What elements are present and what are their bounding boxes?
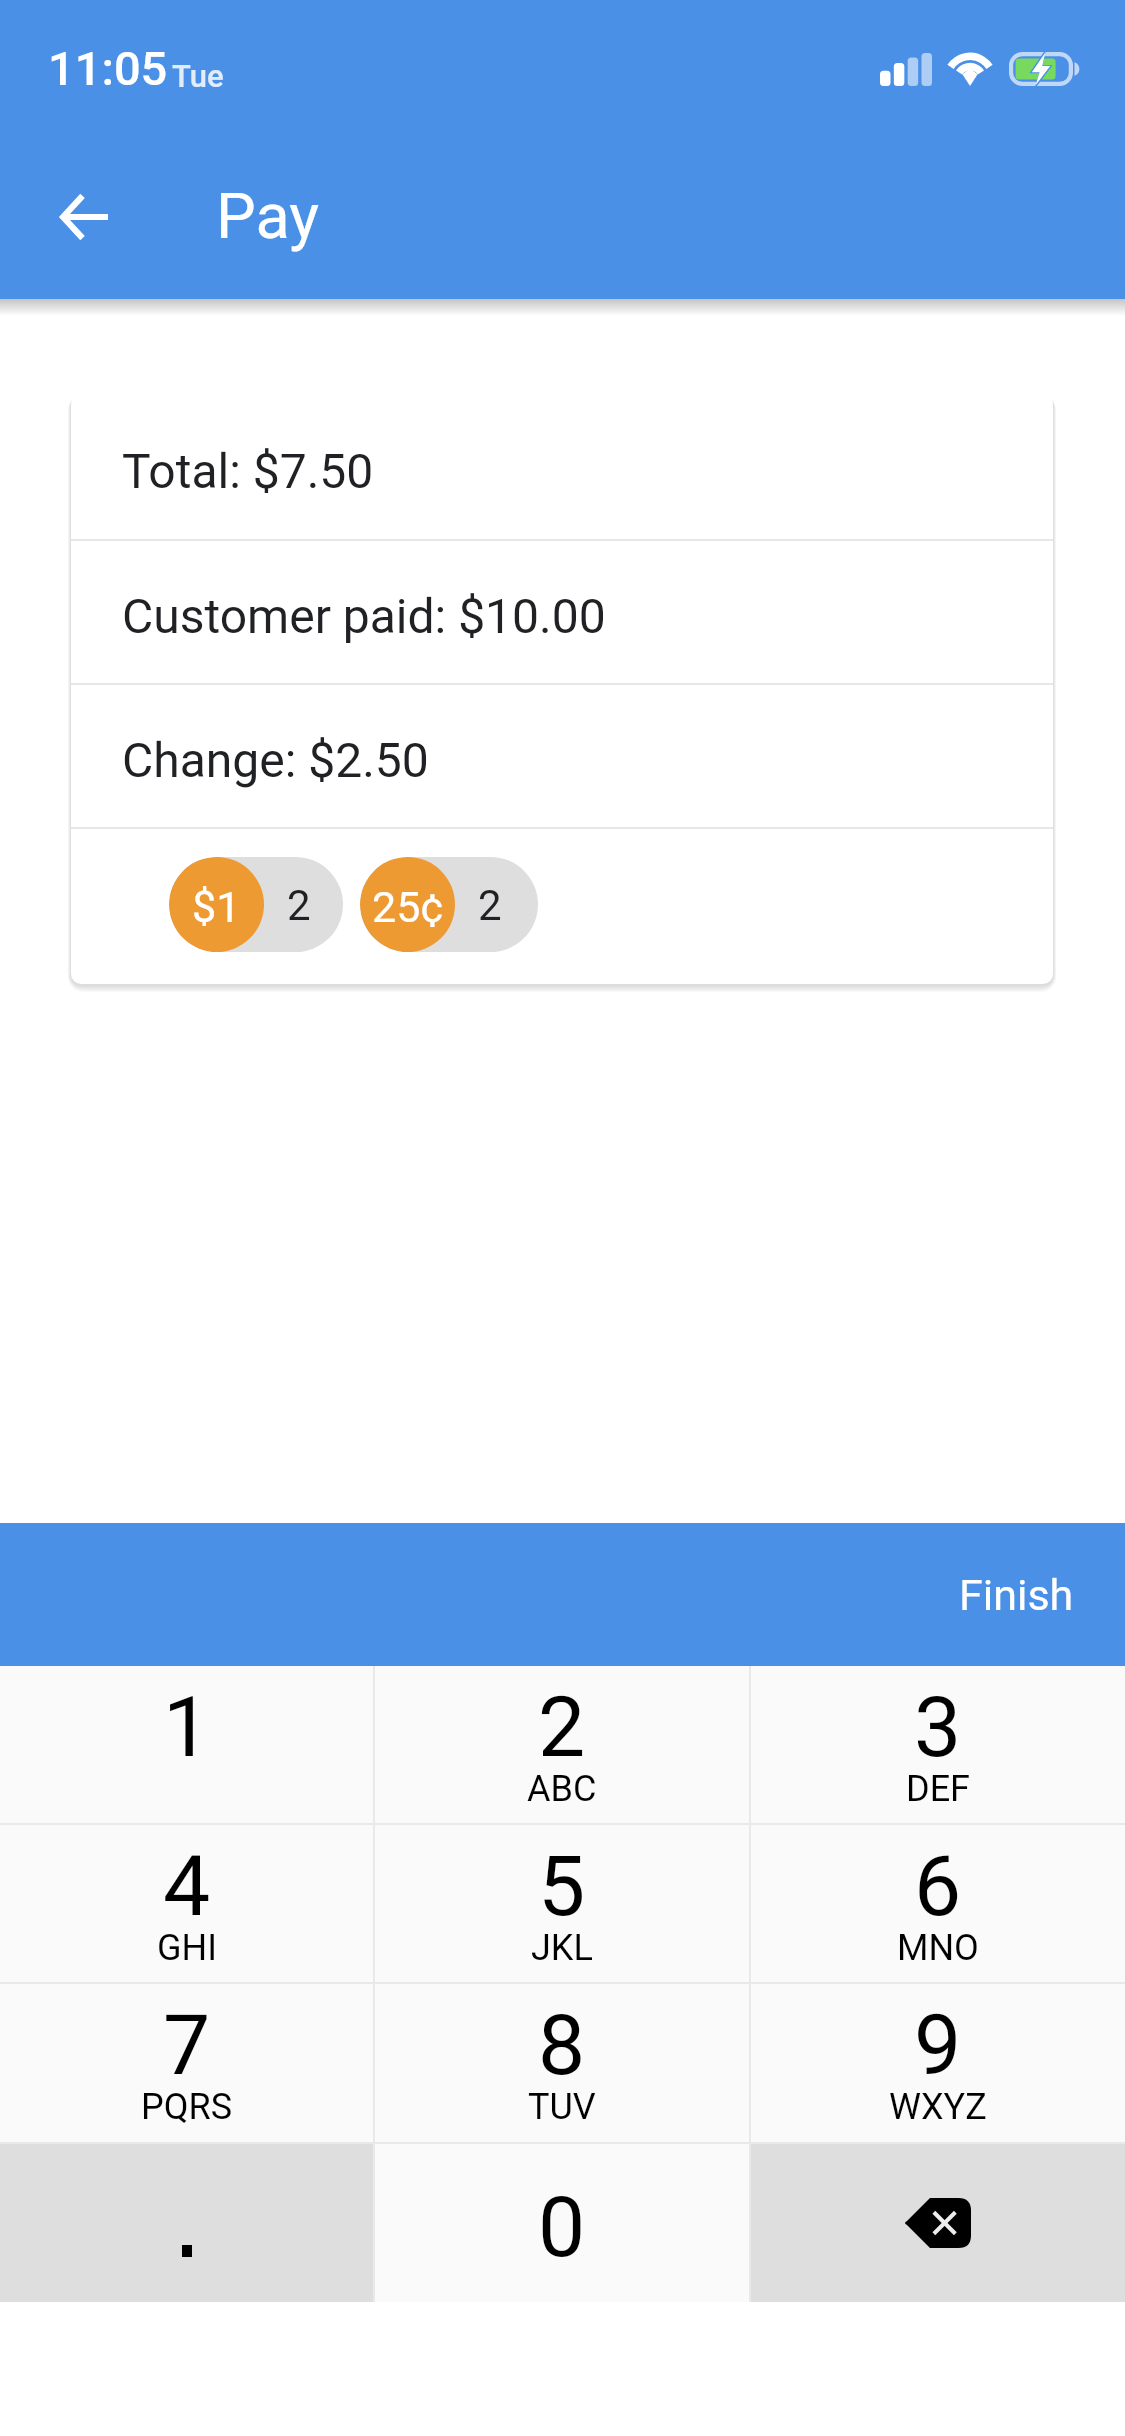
staticText: 9 <box>914 1996 962 2094</box>
staticText: JKL <box>531 1927 593 1969</box>
button[interactable]: Customer paid: $10.00 <box>71 541 1053 683</box>
button[interactable]: Change: $2.50 <box>71 685 1053 827</box>
button[interactable]: 3 <box>751 1666 1125 1823</box>
button[interactable]: 2 <box>169 857 343 952</box>
button[interactable]: 5 <box>375 1825 749 1982</box>
staticText: TUV <box>528 2086 596 2128</box>
staticText: Pay <box>216 180 320 254</box>
staticText: 6 <box>914 1837 962 1935</box>
staticText: 2 <box>478 881 502 930</box>
staticText: WXYZ <box>889 2086 987 2128</box>
staticText: 2 <box>287 881 311 930</box>
staticText: $1 <box>192 882 241 932</box>
staticText: Customer paid: $10.00 <box>122 588 606 644</box>
button[interactable]: 9 <box>751 1984 1125 2142</box>
button[interactable]: 7 <box>0 1984 373 2142</box>
button[interactable]: 2 <box>375 1666 749 1823</box>
staticText: MNO <box>897 1927 979 1969</box>
button[interactable]: 8 <box>375 1984 749 2142</box>
staticText: 25¢ <box>372 882 444 932</box>
staticText: Finish <box>959 1570 1074 1620</box>
button[interactable]: Finish <box>0 1523 1125 1666</box>
staticText: 7 <box>163 1996 211 2094</box>
button[interactable]: Decimal point <box>0 2144 373 2302</box>
staticText: 11:05 <box>48 41 168 96</box>
staticText: 1 <box>163 1678 211 1776</box>
button[interactable]: Back <box>0 152 168 282</box>
staticText: 4 <box>163 1837 211 1935</box>
staticText: PQRS <box>141 2086 233 2128</box>
staticText: 0 <box>538 2178 586 2276</box>
button[interactable]: 2 <box>360 857 538 952</box>
button[interactable]: 1 <box>0 1666 373 1823</box>
staticText: DEF <box>906 1768 970 1810</box>
staticText: 5 <box>538 1837 586 1935</box>
button[interactable]: 0 <box>375 2144 749 2302</box>
button[interactable]: Backspace <box>751 2144 1125 2302</box>
button[interactable]: 4 <box>0 1825 373 1982</box>
staticText: Tue <box>172 58 224 94</box>
staticText: ABC <box>527 1768 597 1810</box>
staticText: 3 <box>914 1678 962 1776</box>
button[interactable]: 6 <box>751 1825 1125 1982</box>
staticText: 2 <box>538 1678 586 1776</box>
staticText: Change: $2.50 <box>122 732 429 788</box>
button[interactable]: Total: $7.50 <box>71 394 1053 539</box>
staticText: 8 <box>538 1996 586 2094</box>
staticText: Total: $7.50 <box>122 443 374 499</box>
staticText: GHI <box>157 1927 217 1969</box>
